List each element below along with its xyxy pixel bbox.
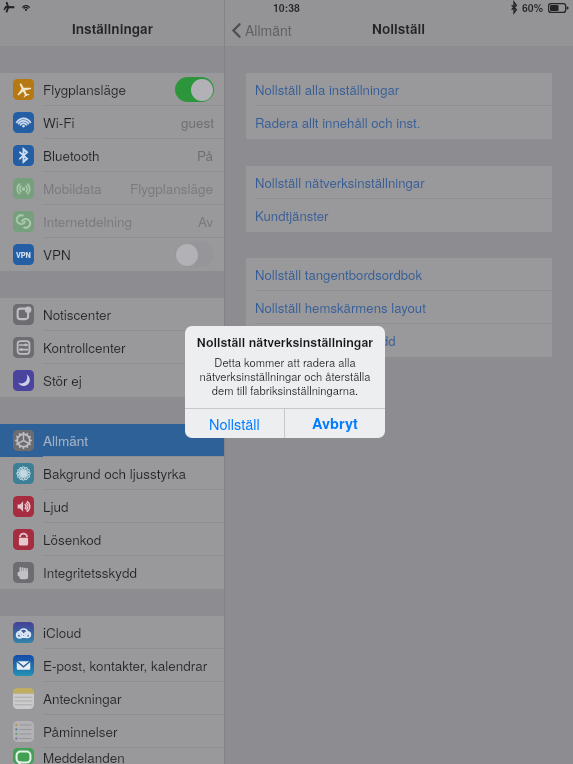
staticText: Wi-Fi [43,113,75,132]
button[interactable]: Lösenkod [0,523,225,556]
button[interactable]: Internetdelning [0,205,225,238]
button[interactable]: Nollställ plats och skydd [246,324,552,357]
staticText: Lösenkod [43,530,102,549]
button[interactable]: Radera allt innehåll och inst. [246,106,552,139]
staticText: Nollställ hemskärmens layout [255,298,426,317]
staticText: Detta kommer att radera alla nätverksins… [192,354,378,398]
staticText: Notiscenter [43,305,111,324]
button[interactable]: Integritetsskydd [0,556,225,589]
staticText: VPN [43,245,71,264]
staticText: Nollställ alla inställningar [255,80,400,99]
button[interactable]: Ljud [0,490,225,523]
button[interactable]: Wi-Fi [0,106,225,139]
button[interactable]: Kontrollcenter [0,331,225,364]
staticText: Kundtjänster [255,206,329,225]
staticText: Nollställ [209,413,260,434]
staticText: Nollställ plats och skydd [255,331,396,350]
button[interactable]: Allmänt [0,424,225,457]
staticText: Anteckningar [43,689,122,708]
staticText: Inställningar [72,19,153,38]
staticText: Nollställ [372,19,426,38]
staticText: Flygplansläge [130,179,214,198]
staticText: Integritetsskydd [43,563,138,582]
staticText: Meddelanden [43,748,125,764]
staticText: Påminnelser [43,722,118,741]
button[interactable]: Kundtjänster [246,199,552,232]
button[interactable]: Nollställ tangentbordsordbok [246,258,552,291]
button[interactable]: Påminnelser [0,715,225,748]
staticText: Allmänt [43,431,89,450]
button[interactable]: Stör ej [0,364,225,397]
staticText: 10:38 [273,0,300,15]
staticText: E-post, kontakter, kalendrar [43,656,208,675]
staticText: Allmänt [245,20,292,40]
staticText: Radera allt innehåll och inst. [255,113,421,132]
button[interactable]: Bakgrund och ljusstyrka [0,457,225,490]
button[interactable]: Flygplansläge [0,73,225,106]
staticText: Nollställ nätverksinställningar [255,173,425,192]
button[interactable]: Avbryt [285,409,385,438]
button[interactable]: Nollställ nätverksinställningar [246,166,552,199]
staticText: På [197,146,214,165]
button[interactable]: VPN [0,238,225,271]
button[interactable]: Anteckningar [0,682,225,715]
staticText: guest [181,113,214,132]
staticText: 60% [522,0,544,15]
staticText: Av [198,212,214,231]
staticText: Nollställ nätverksinställningar [185,333,385,351]
button[interactable]: Notiscenter [0,298,225,331]
button[interactable]: Nollställ [185,409,284,438]
button[interactable]: iCloud [0,616,225,649]
staticText: Bakgrund och ljusstyrka [43,464,187,483]
staticText: Stör ej [43,371,82,390]
staticText: Bluetooth [43,146,100,165]
button[interactable]: Bluetooth [0,139,225,172]
staticText: iCloud [43,623,82,642]
staticText: VPN [16,250,31,260]
button[interactable]: Nollställ alla inställningar [246,73,552,106]
button[interactable]: E-post, kontakter, kalendrar [0,649,225,682]
staticText: Nollställ tangentbordsordbok [255,265,423,284]
staticText: Ljud [43,497,69,516]
staticText: Mobildata [43,179,102,198]
staticText: Internetdelning [43,212,132,231]
button[interactable]: Mobildata [0,172,225,205]
staticText: Kontrollcenter [43,338,126,357]
staticText: Avbryt [312,413,358,434]
button[interactable]: Nollställ hemskärmens layout [246,291,552,324]
button[interactable]: Meddelanden [0,748,225,764]
button[interactable]: Allmänt [230,17,294,43]
staticText: Flygplansläge [43,80,127,99]
